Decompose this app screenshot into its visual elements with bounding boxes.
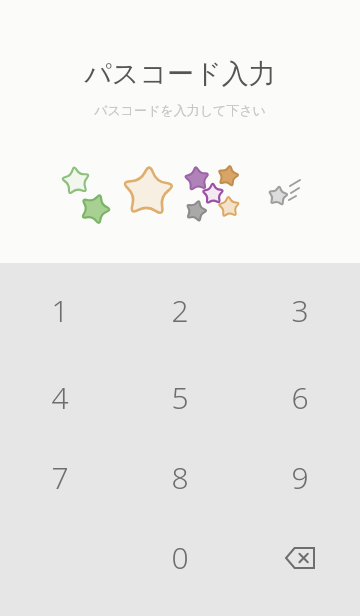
button[interactable]: 3: [240, 263, 360, 358]
staticText: 5: [171, 377, 189, 418]
staticText: 6: [291, 377, 309, 418]
staticText: 7: [51, 457, 69, 498]
staticText: 1: [51, 290, 69, 331]
staticText: 0: [171, 537, 189, 578]
button[interactable]: 9: [240, 437, 360, 517]
button[interactable]: 7: [0, 437, 120, 517]
staticText: パスコードを入力して下さい: [0, 102, 360, 118]
staticText: パスコード入力: [0, 57, 360, 91]
button[interactable]: 0: [120, 517, 240, 598]
button[interactable]: 1: [0, 263, 120, 358]
staticText: 4: [51, 377, 69, 418]
staticText: 3: [291, 290, 309, 331]
button[interactable]: Delete: [240, 517, 360, 598]
button[interactable]: 8: [120, 437, 240, 517]
staticText: 8: [171, 457, 189, 498]
staticText: 9: [291, 457, 309, 498]
button[interactable]: 2: [120, 263, 240, 358]
button[interactable]: 5: [120, 358, 240, 437]
button[interactable]: 6: [240, 358, 360, 437]
staticText: 2: [171, 290, 189, 331]
button[interactable]: 4: [0, 358, 120, 437]
